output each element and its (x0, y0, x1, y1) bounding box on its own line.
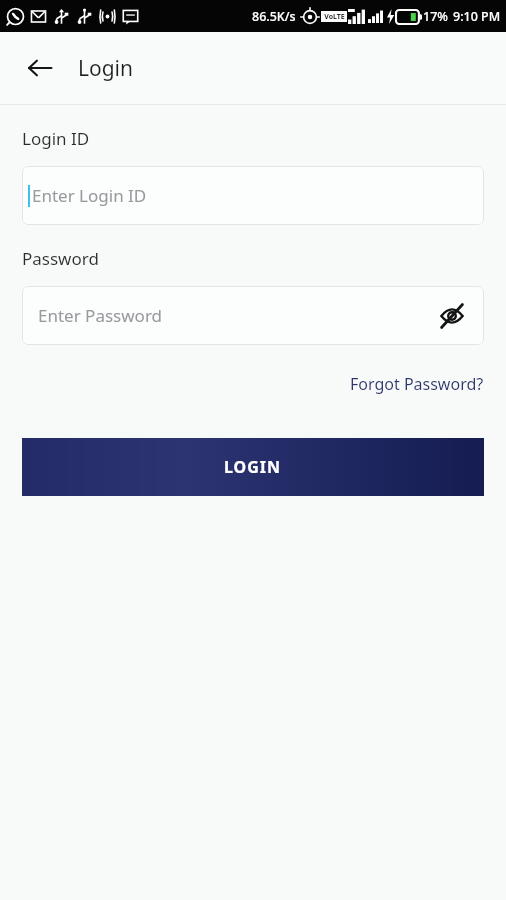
staticText: 9:10 PM (453, 8, 501, 25)
staticText: Enter Login ID (32, 184, 147, 207)
staticText: Login (78, 54, 134, 83)
button[interactable]: Back (18, 46, 62, 90)
button[interactable]: Show password (430, 294, 474, 338)
staticText: Password (22, 247, 99, 270)
staticText: LOGIN (224, 456, 282, 478)
button[interactable]: Enter Login ID (22, 166, 484, 225)
staticText: 86.5K/s (252, 8, 296, 25)
staticText: 17% (423, 8, 448, 25)
button[interactable]: Forgot Password? (328, 365, 506, 403)
staticText: Login ID (22, 127, 90, 150)
staticText: Forgot Password? (350, 373, 484, 395)
button[interactable]: Enter Password (22, 286, 484, 345)
staticText: Enter Password (38, 304, 163, 327)
staticText: VoLTE (324, 12, 345, 22)
button[interactable]: LOGIN (22, 438, 484, 496)
